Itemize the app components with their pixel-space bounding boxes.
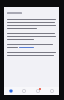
- button[interactable]: Notifications: [31, 87, 45, 95]
- button[interactable]: Home: [4, 87, 17, 95]
- button[interactable]: Search: [17, 87, 31, 95]
- button[interactable]: Profile: [45, 87, 59, 95]
- button[interactable]: [7, 47, 56, 48]
- button[interactable]: [7, 11, 22, 15]
